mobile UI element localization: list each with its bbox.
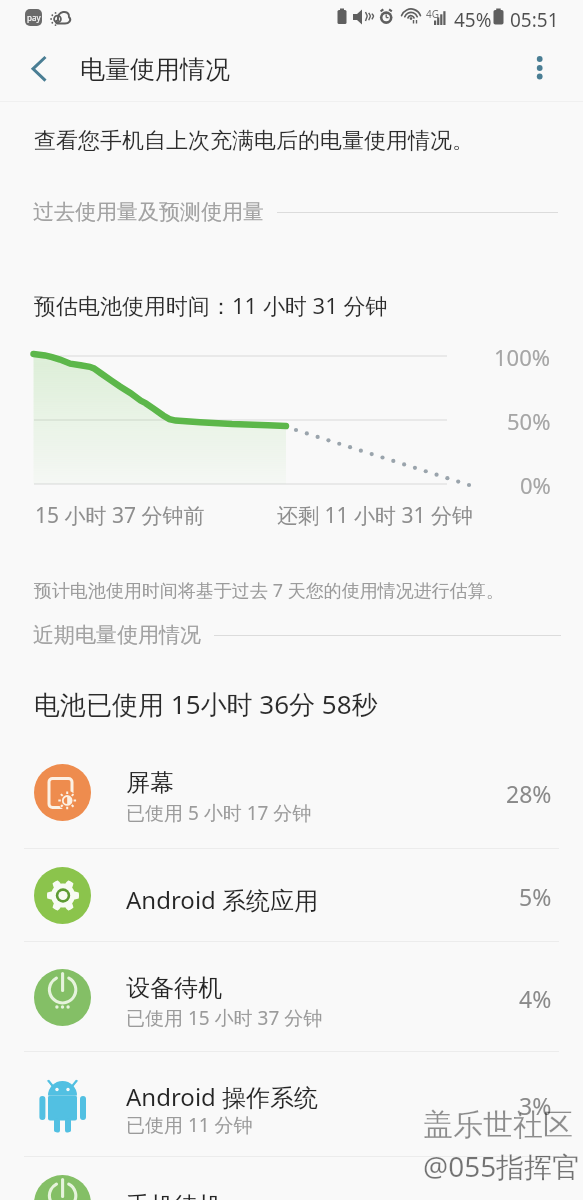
staticText: 已使用 15 小时 37 分钟: [126, 1005, 323, 1031]
button[interactable]: More options: [517, 45, 563, 91]
button[interactable]: Android 系统应用: [0, 845, 583, 947]
staticText: 50%: [507, 406, 551, 436]
staticText: 还剩 11 小时 31 分钟: [277, 501, 473, 530]
button[interactable]: 设备待机: [0, 947, 583, 1049]
staticText: @055指挥官: [423, 1147, 581, 1185]
staticText: 15 小时 37 分钟前: [35, 501, 205, 530]
staticText: pay: [27, 12, 41, 23]
staticText: 过去使用量及预测使用量: [33, 199, 264, 225]
staticText: 预估电池使用时间：11 小时 31 分钟: [34, 290, 388, 320]
staticText: 45%: [454, 7, 492, 33]
staticText: 已使用 11 分钟: [126, 1112, 253, 1138]
button[interactable]: Android 操作系统: [0, 1054, 583, 1156]
staticText: 4G: [426, 7, 439, 21]
staticText: 100%: [494, 342, 551, 372]
staticText: 设备待机: [126, 973, 222, 1003]
button[interactable]: Back: [14, 45, 61, 92]
staticText: 5%: [519, 881, 552, 912]
staticText: 28%: [506, 778, 552, 809]
staticText: 预计电池使用时间将基于过去 7 天您的使用情况进行估算。: [34, 578, 504, 603]
staticText: 手机待机: [126, 1191, 222, 1200]
staticText: 屏幕: [126, 768, 174, 798]
staticText: 0%: [520, 470, 551, 500]
staticText: 电池已使用 15小时 36分 58秒: [34, 686, 378, 722]
staticText: 已使用 5 小时 17 分钟: [126, 800, 312, 826]
staticText: 05:51: [510, 7, 559, 33]
staticText: 电量使用情况: [80, 54, 230, 85]
staticText: Android 操作系统: [126, 1080, 319, 1113]
staticText: 近期电量使用情况: [33, 622, 201, 648]
button[interactable]: 手机待机: [0, 1153, 583, 1200]
staticText: 盖乐世社区: [423, 1106, 573, 1144]
staticText: 查看您手机自上次充满电后的电量使用情况。: [34, 127, 474, 155]
staticText: Android 系统应用: [126, 883, 319, 916]
staticText: 3%: [519, 1090, 552, 1121]
button[interactable]: 屏幕: [0, 742, 583, 844]
staticText: 4%: [519, 983, 552, 1014]
